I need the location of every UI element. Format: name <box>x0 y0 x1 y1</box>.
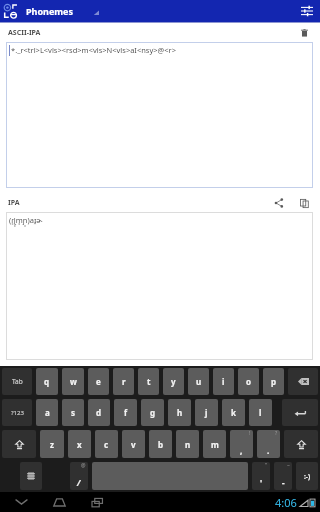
staticText: f <box>124 407 128 418</box>
button[interactable]: g <box>141 399 164 426</box>
staticText: e <box>96 376 101 387</box>
staticText: ? <box>275 430 278 437</box>
staticText: . <box>267 445 270 456</box>
staticText: ?123 <box>11 409 24 417</box>
button[interactable]: e <box>88 368 109 395</box>
button[interactable]: Hide keyboard <box>8 493 34 511</box>
staticText: Phonemes <box>26 5 73 17</box>
staticText: k <box>231 407 236 418</box>
staticText: " <box>265 462 268 469</box>
button[interactable]: Shift <box>2 430 36 458</box>
button[interactable]: i <box>213 368 234 395</box>
button[interactable]: Tab <box>2 368 32 395</box>
button[interactable]: x <box>68 430 91 458</box>
button[interactable]: Change keyboard <box>20 462 42 490</box>
button[interactable]: ?123 <box>2 399 32 426</box>
button[interactable]: f <box>114 399 137 426</box>
staticText: n <box>185 439 191 450</box>
button[interactable]: ! <box>230 430 253 458</box>
button[interactable]: Enter <box>282 399 318 426</box>
staticText: s <box>71 407 76 418</box>
button[interactable]: t <box>138 368 159 395</box>
button[interactable]: k <box>222 399 245 426</box>
button[interactable]: h <box>168 399 191 426</box>
staticText: y <box>171 376 176 387</box>
staticText: x <box>77 439 82 450</box>
staticText: ' <box>260 477 263 488</box>
staticText: q <box>44 376 50 387</box>
staticText: v <box>131 439 136 450</box>
button[interactable]: o <box>238 368 259 395</box>
button[interactable]: " <box>252 462 270 490</box>
staticText: t <box>147 376 151 387</box>
button[interactable]: s <box>62 399 84 426</box>
staticText: b <box>158 439 164 450</box>
staticText: :-) <box>304 472 311 481</box>
button[interactable]: *._r<trl>L<vls><rsd>m<vls>N<vls>aI<nsy>@… <box>6 42 313 188</box>
staticText: d <box>96 407 102 418</box>
button[interactable]: Shift <box>284 430 318 458</box>
staticText: i <box>222 376 225 387</box>
button[interactable]: Share <box>271 195 287 211</box>
staticText: (ɾ̥ɭ̥m̥ɲ̥)aɪ̯ə˞ <box>9 215 43 225</box>
button[interactable]: n <box>176 430 199 458</box>
staticText: ASCII-IPA <box>8 28 41 38</box>
staticText: a <box>45 407 50 418</box>
button[interactable]: w <box>62 368 84 395</box>
staticText: Tab <box>12 377 23 386</box>
button[interactable]: @ <box>70 462 88 490</box>
button[interactable]: (ɾ̥ɭ̥m̥ɲ̥)aɪ̯ə˞ <box>6 212 313 360</box>
button[interactable]: Copy <box>296 195 312 211</box>
staticText: z <box>50 439 54 450</box>
button[interactable]: m <box>203 430 226 458</box>
staticText: ! <box>249 430 251 437</box>
staticText: IPA <box>8 198 20 208</box>
button[interactable]: :-) <box>296 462 318 490</box>
button[interactable]: r <box>113 368 134 395</box>
button[interactable]: y <box>163 368 184 395</box>
staticText: g <box>150 407 156 418</box>
button[interactable]: q <box>36 368 58 395</box>
button[interactable]: p <box>263 368 284 395</box>
button[interactable]: Home <box>46 493 72 511</box>
staticText: *._r<trl>L<vls><rsd>m<vls>N<vls>aI<nsy>@… <box>11 45 176 55</box>
staticText: w <box>70 376 77 387</box>
staticText: m <box>211 439 219 450</box>
staticText: c <box>104 439 109 450</box>
staticText: @ <box>81 462 86 469</box>
button[interactable]: a <box>36 399 58 426</box>
staticText: o <box>246 376 251 387</box>
staticText: j <box>205 407 208 418</box>
button[interactable]: ? <box>257 430 280 458</box>
button[interactable]: Recent apps <box>84 493 110 511</box>
staticText: r <box>122 376 126 387</box>
staticText: / <box>77 477 81 488</box>
button[interactable]: j <box>195 399 218 426</box>
staticText: ~ <box>287 462 290 469</box>
staticText: - <box>282 477 285 488</box>
staticText: h <box>177 407 183 418</box>
staticText: 4:06 <box>275 495 297 510</box>
button[interactable]: l <box>249 399 272 426</box>
button[interactable]: z <box>40 430 64 458</box>
staticText: , <box>240 445 243 456</box>
button[interactable]: Backspace <box>288 368 318 395</box>
button[interactable]: d <box>88 399 110 426</box>
button[interactable]: Clear text <box>296 25 312 41</box>
button[interactable]: ~ <box>274 462 292 490</box>
staticText: p <box>271 376 277 387</box>
button[interactable]: b <box>149 430 172 458</box>
staticText: u <box>196 376 202 387</box>
button[interactable]: Navigate up <box>0 0 103 22</box>
staticText: l <box>259 407 262 418</box>
button[interactable]: c <box>95 430 118 458</box>
button[interactable]: Settings <box>294 0 320 22</box>
button[interactable]: v <box>122 430 145 458</box>
button[interactable]: u <box>188 368 209 395</box>
